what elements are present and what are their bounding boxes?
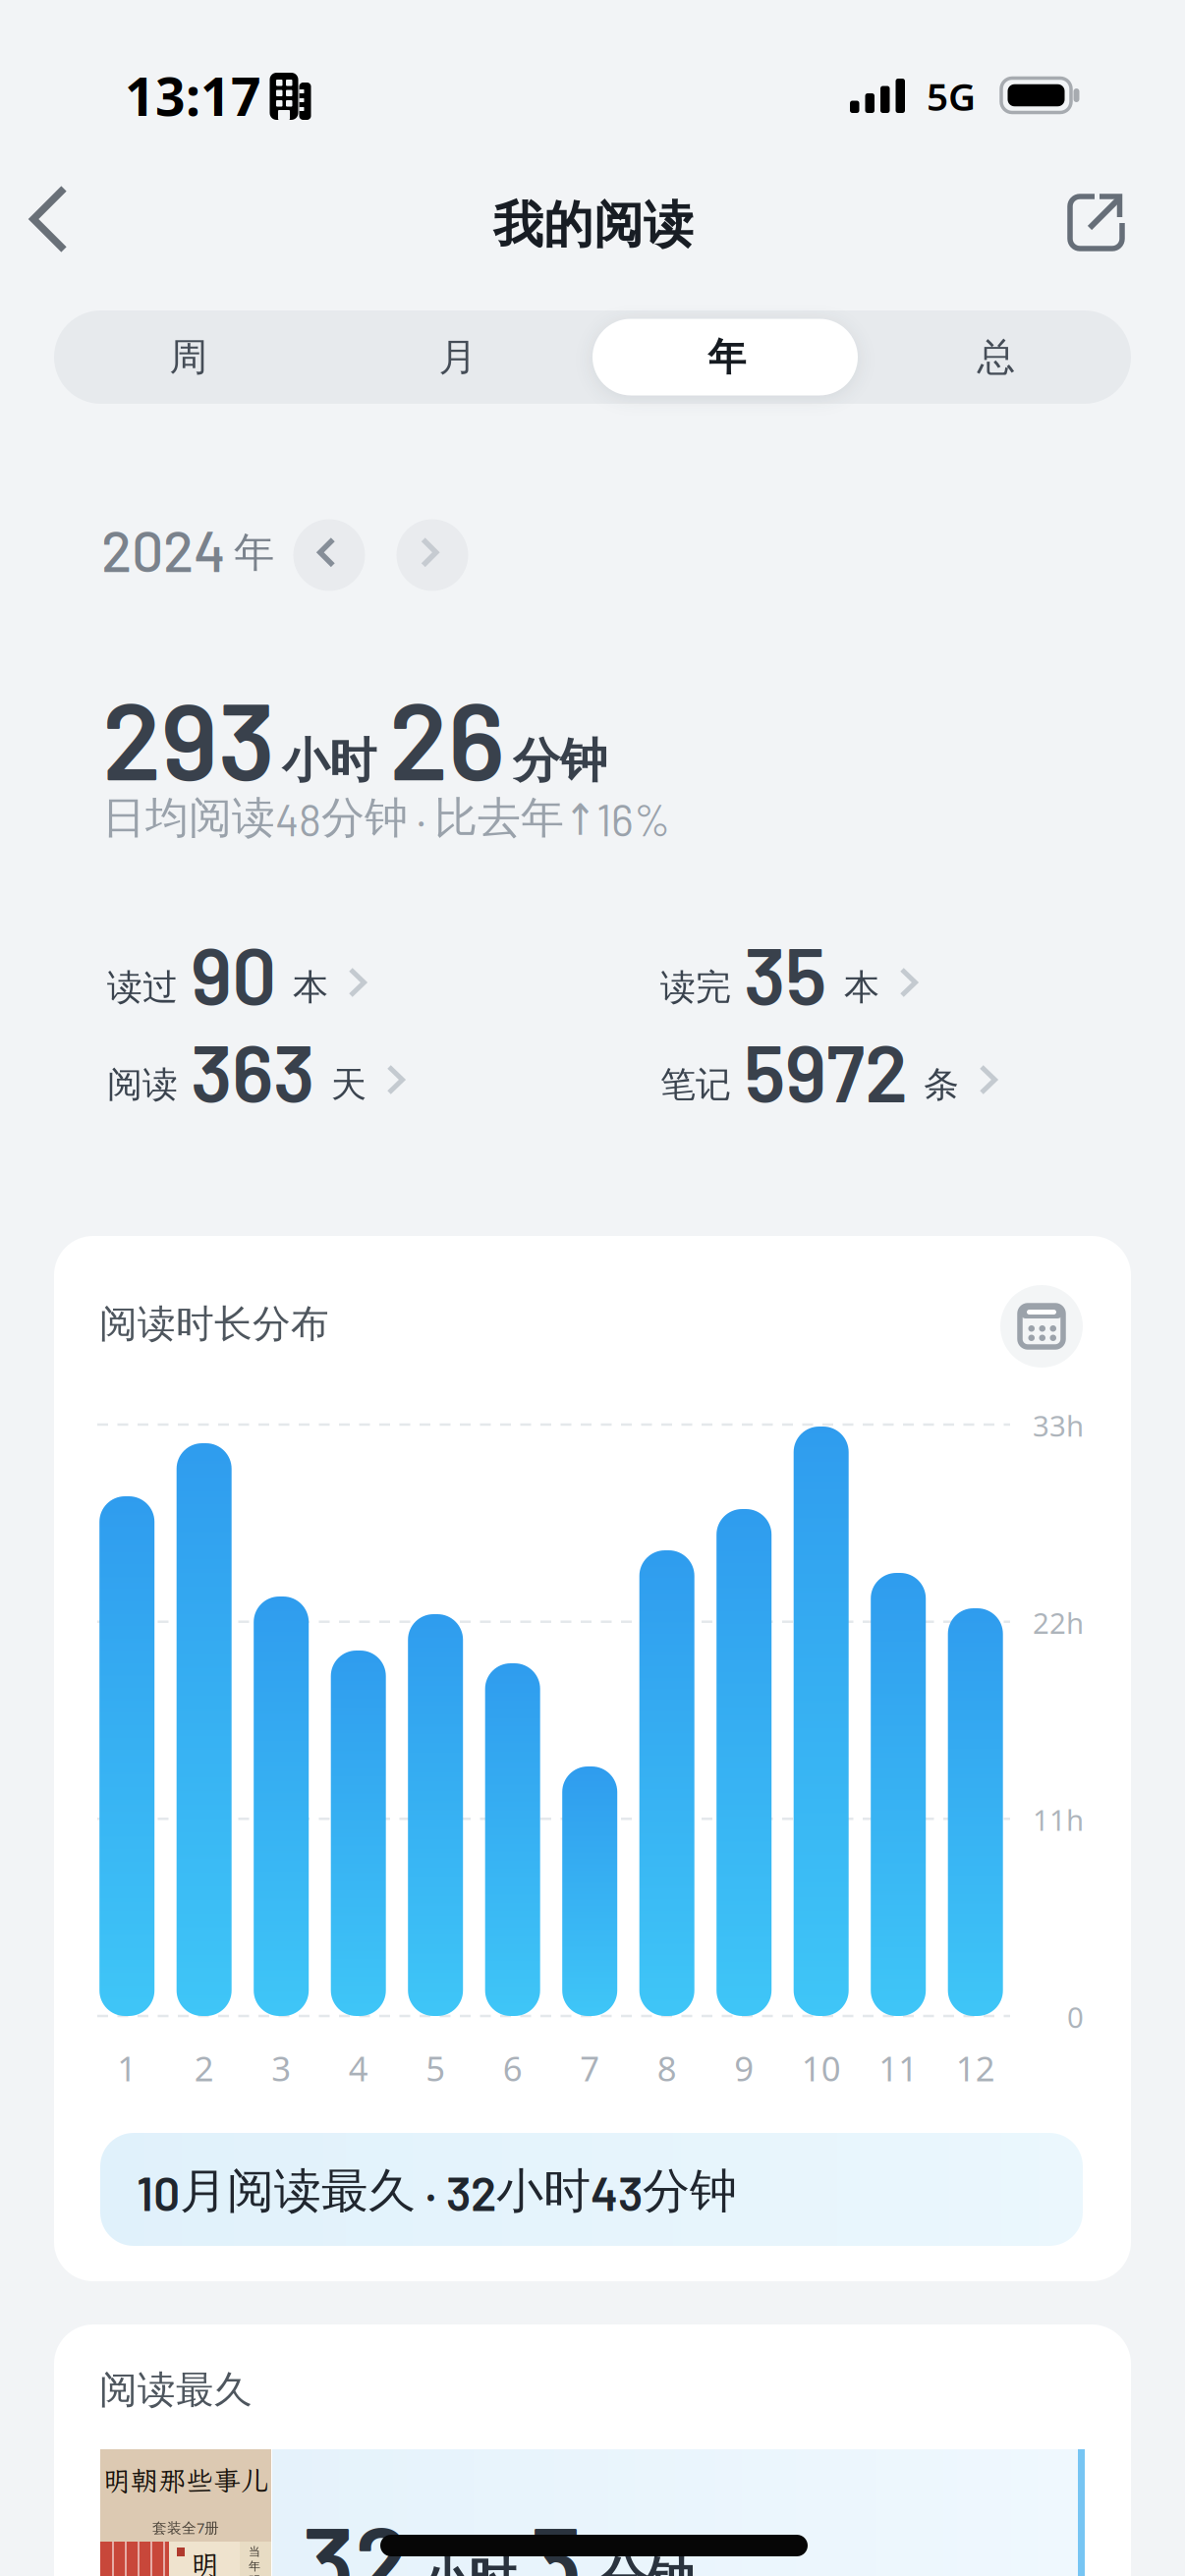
staticText: 套装全7册 [152,2518,219,2537]
staticText: 我的阅读 [493,195,694,256]
staticText: 年 [708,334,746,381]
staticText: 293 [102,673,275,802]
staticText: 阅读时长分布 [99,1301,329,1347]
button[interactable]: 年 [592,310,862,404]
staticText: 3 [530,2499,583,2576]
staticText: 周 [169,334,208,381]
staticText: 7 [580,2045,600,2091]
staticText: 35 [744,926,826,1021]
staticText: 本 [844,966,879,1009]
staticText: 13:17 [125,61,261,130]
staticText: 读完 [660,966,731,1009]
staticText: 分钟 [599,2550,694,2576]
button[interactable]: 读完 [660,926,926,1021]
staticText: 5G [927,71,976,121]
staticText: 32 [302,2499,410,2576]
staticText: 8 [657,2045,677,2091]
staticText: 0 [1067,1998,1084,2036]
staticText: 读过 [107,966,178,1009]
staticText: 明 [191,2546,219,2576]
staticText: 小时 [282,732,376,790]
staticText: 总 [977,334,1016,381]
staticText: 天 [331,1063,367,1106]
staticText: 363 [191,1024,314,1118]
staticText: 明朝那些事儿 [103,2462,268,2498]
staticText: 小时 [422,2550,516,2576]
staticText: 22h [1033,1603,1084,1642]
staticText: 10月阅读最久 · 32小时43分钟 [137,2161,737,2221]
staticText: 笔记 [660,1063,731,1106]
staticText: 本 [293,966,328,1009]
staticText: 5 [426,2045,445,2091]
button[interactable]: 读过 [107,926,374,1021]
staticText: 年 [234,528,274,577]
staticText: 2024 [101,516,226,583]
staticText: 3 [271,2045,291,2091]
staticText: 5972 [744,1024,908,1118]
staticText: 33h [1033,1406,1084,1445]
staticText: 月 [439,334,477,381]
staticText: 4 [349,2045,368,2091]
staticText: 10 [801,2045,841,2091]
staticText: 90 [191,926,276,1021]
staticText: 分钟 [513,732,607,790]
staticText: 11h [1033,1801,1084,1839]
staticText: 阅读最久 [99,2367,253,2413]
staticText: 阅读 [107,1063,178,1106]
button[interactable]: 笔记 [660,1024,1005,1118]
button[interactable]: Share [1070,196,1125,252]
button[interactable]: 明朝那些事儿 [100,2449,1085,2576]
staticText: 日均阅读48分钟 · 比去年↑16% [102,791,670,845]
button[interactable]: 总 [862,310,1131,404]
staticText: 12 [956,2045,995,2091]
button[interactable]: 周 [54,310,323,404]
staticText: 11 [879,2045,918,2091]
staticText: 6 [503,2045,522,2091]
button[interactable]: Previous year [293,519,365,591]
button[interactable]: 月 [323,310,592,404]
button[interactable]: 阅读 [107,1024,413,1118]
button[interactable]: Next year [396,519,468,591]
button[interactable]: Calendar [1000,1285,1083,1368]
staticText: 条 [924,1063,959,1106]
button[interactable]: Back [0,0,92,271]
staticText: 26 [389,673,505,802]
staticText: 9 [734,2045,754,2091]
staticText: 2 [194,2045,214,2091]
staticText: 当年明 [249,2545,260,2576]
staticText: 1 [117,2045,137,2091]
